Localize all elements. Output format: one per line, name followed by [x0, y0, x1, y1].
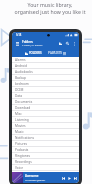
button[interactable]: Alarms: [12, 57, 79, 63]
button[interactable]: Android: [12, 63, 79, 69]
button[interactable]: Pictures: [12, 141, 79, 147]
staticText: Recordings: [15, 160, 32, 164]
staticText: Backup: [15, 76, 27, 80]
staticText: Alarms: [15, 58, 26, 62]
staticText: Listening: [15, 118, 29, 122]
button[interactable]: FOLDERS: [24, 50, 43, 56]
button[interactable]: Podcasts: [12, 147, 79, 153]
button[interactable]: Search: [64, 40, 71, 47]
button[interactable]: More options: [71, 40, 78, 47]
staticText: Android: [15, 64, 27, 68]
staticText: Data: [15, 94, 23, 98]
staticText: Music: [15, 130, 24, 134]
staticText: Misc: [15, 112, 22, 116]
staticText: Voice: [15, 166, 23, 170]
button[interactable]: Listening: [12, 117, 79, 123]
button[interactable]: Play: [66, 175, 72, 181]
button[interactable]: Folder view: [57, 40, 64, 47]
staticText: Pictures: [15, 142, 27, 146]
staticText: Awesome: [25, 174, 39, 178]
button[interactable]: Movies: [12, 123, 79, 129]
button[interactable]: Previous: [60, 175, 66, 181]
staticText: PLAYLISTS: [48, 51, 62, 55]
button[interactable]: Voice: [12, 165, 79, 171]
staticText: Ringtones: [15, 154, 31, 158]
staticText: Documents: [15, 100, 33, 104]
staticText: bedroom: [15, 82, 29, 86]
staticText: Folders: [22, 40, 33, 44]
staticText: 4 songs, 21 folders: [22, 44, 43, 47]
button[interactable]: Download: [12, 105, 79, 111]
button[interactable]: Recordings: [12, 159, 79, 165]
button[interactable]: Notifications: [12, 135, 79, 141]
staticText: DCIM: [15, 88, 24, 92]
button[interactable]: Misc: [12, 111, 79, 117]
staticText: Movies: [15, 124, 26, 128]
staticText: Your music library, organised just how y…: [4, 1, 92, 15]
button[interactable]: PLAYLISTS: [47, 50, 67, 56]
staticText: Download: [15, 106, 31, 110]
button[interactable]: Ringtones: [12, 153, 79, 159]
button[interactable]: Open navigation menu: [14, 40, 20, 46]
button[interactable]: DCIM: [12, 87, 79, 93]
button[interactable]: Documents: [12, 99, 79, 105]
staticText: Podcasts: [15, 148, 29, 152]
staticText: 5:18: [16, 33, 22, 37]
staticText: Notifications: [15, 136, 34, 140]
button[interactable]: Music: [12, 129, 79, 135]
staticText: Audiobooks: [15, 70, 33, 74]
button[interactable]: Data: [12, 93, 79, 99]
button[interactable]: bedroom: [12, 81, 79, 87]
staticText: La Tortilla Quintet: [25, 178, 45, 181]
button[interactable]: Backup: [12, 75, 79, 81]
button[interactable]: Audiobooks: [12, 69, 79, 75]
button[interactable]: Next: [72, 175, 78, 181]
staticText: FOLDERS: [29, 51, 42, 55]
